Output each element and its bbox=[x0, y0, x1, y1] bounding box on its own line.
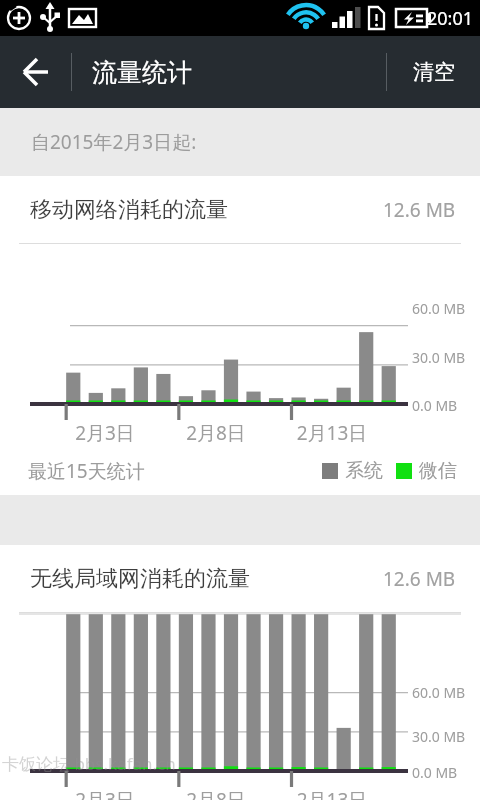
button[interactable]: 返回 bbox=[0, 36, 72, 108]
staticText: 0.0 MB bbox=[412, 763, 458, 782]
staticText: 自2015年2月3日起: bbox=[31, 129, 197, 155]
staticText: 60.0 MB bbox=[412, 683, 466, 702]
staticText: 2月3日 bbox=[60, 787, 150, 800]
staticText: 微信 bbox=[419, 459, 457, 483]
staticText: 60.0 MB bbox=[412, 299, 466, 318]
staticText: 12.6 MB bbox=[383, 566, 456, 592]
staticText: 30.0 MB bbox=[412, 727, 466, 746]
staticText: 2月13日 bbox=[287, 420, 377, 446]
staticText: 2月13日 bbox=[287, 787, 377, 800]
button[interactable]: 无线局域网消耗的流量 bbox=[0, 545, 480, 613]
staticText: 2月8日 bbox=[171, 787, 261, 800]
staticText: 20:01 bbox=[427, 6, 474, 31]
staticText: 清空 bbox=[413, 59, 455, 85]
staticText: 2月8日 bbox=[171, 420, 261, 446]
button[interactable]: 清空 bbox=[387, 36, 480, 108]
staticText: 30.0 MB bbox=[412, 348, 466, 367]
staticText: 无线局域网消耗的流量 bbox=[30, 565, 250, 593]
staticText: 2月3日 bbox=[60, 420, 150, 446]
staticText: 系统 bbox=[345, 459, 383, 483]
button[interactable]: 移动网络消耗的流量 bbox=[0, 176, 480, 244]
staticText: 移动网络消耗的流量 bbox=[30, 196, 228, 224]
staticText: 0.0 MB bbox=[412, 396, 458, 415]
staticText: 流量统计 bbox=[92, 57, 192, 88]
staticText: 卡饭论坛 bbs.kafan.cn bbox=[2, 752, 176, 775]
staticText: 最近15天统计 bbox=[28, 458, 145, 484]
staticText: 12.6 MB bbox=[383, 197, 456, 223]
